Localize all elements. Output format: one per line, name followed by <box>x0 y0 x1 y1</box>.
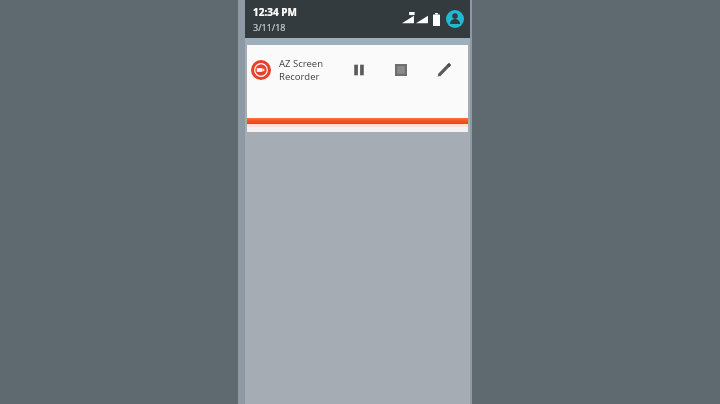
button[interactable]: Edit <box>432 58 456 82</box>
button[interactable]: Pause recording <box>348 59 370 81</box>
staticText: 3/11/18 <box>253 21 286 33</box>
staticText: AZ Screen Recorder <box>279 57 348 83</box>
button[interactable]: Account <box>446 10 464 28</box>
button[interactable]: AZ Screen Recorder <box>247 45 468 118</box>
button[interactable]: Stop recording <box>390 59 412 81</box>
staticText: 12:34 PM <box>253 5 297 19</box>
